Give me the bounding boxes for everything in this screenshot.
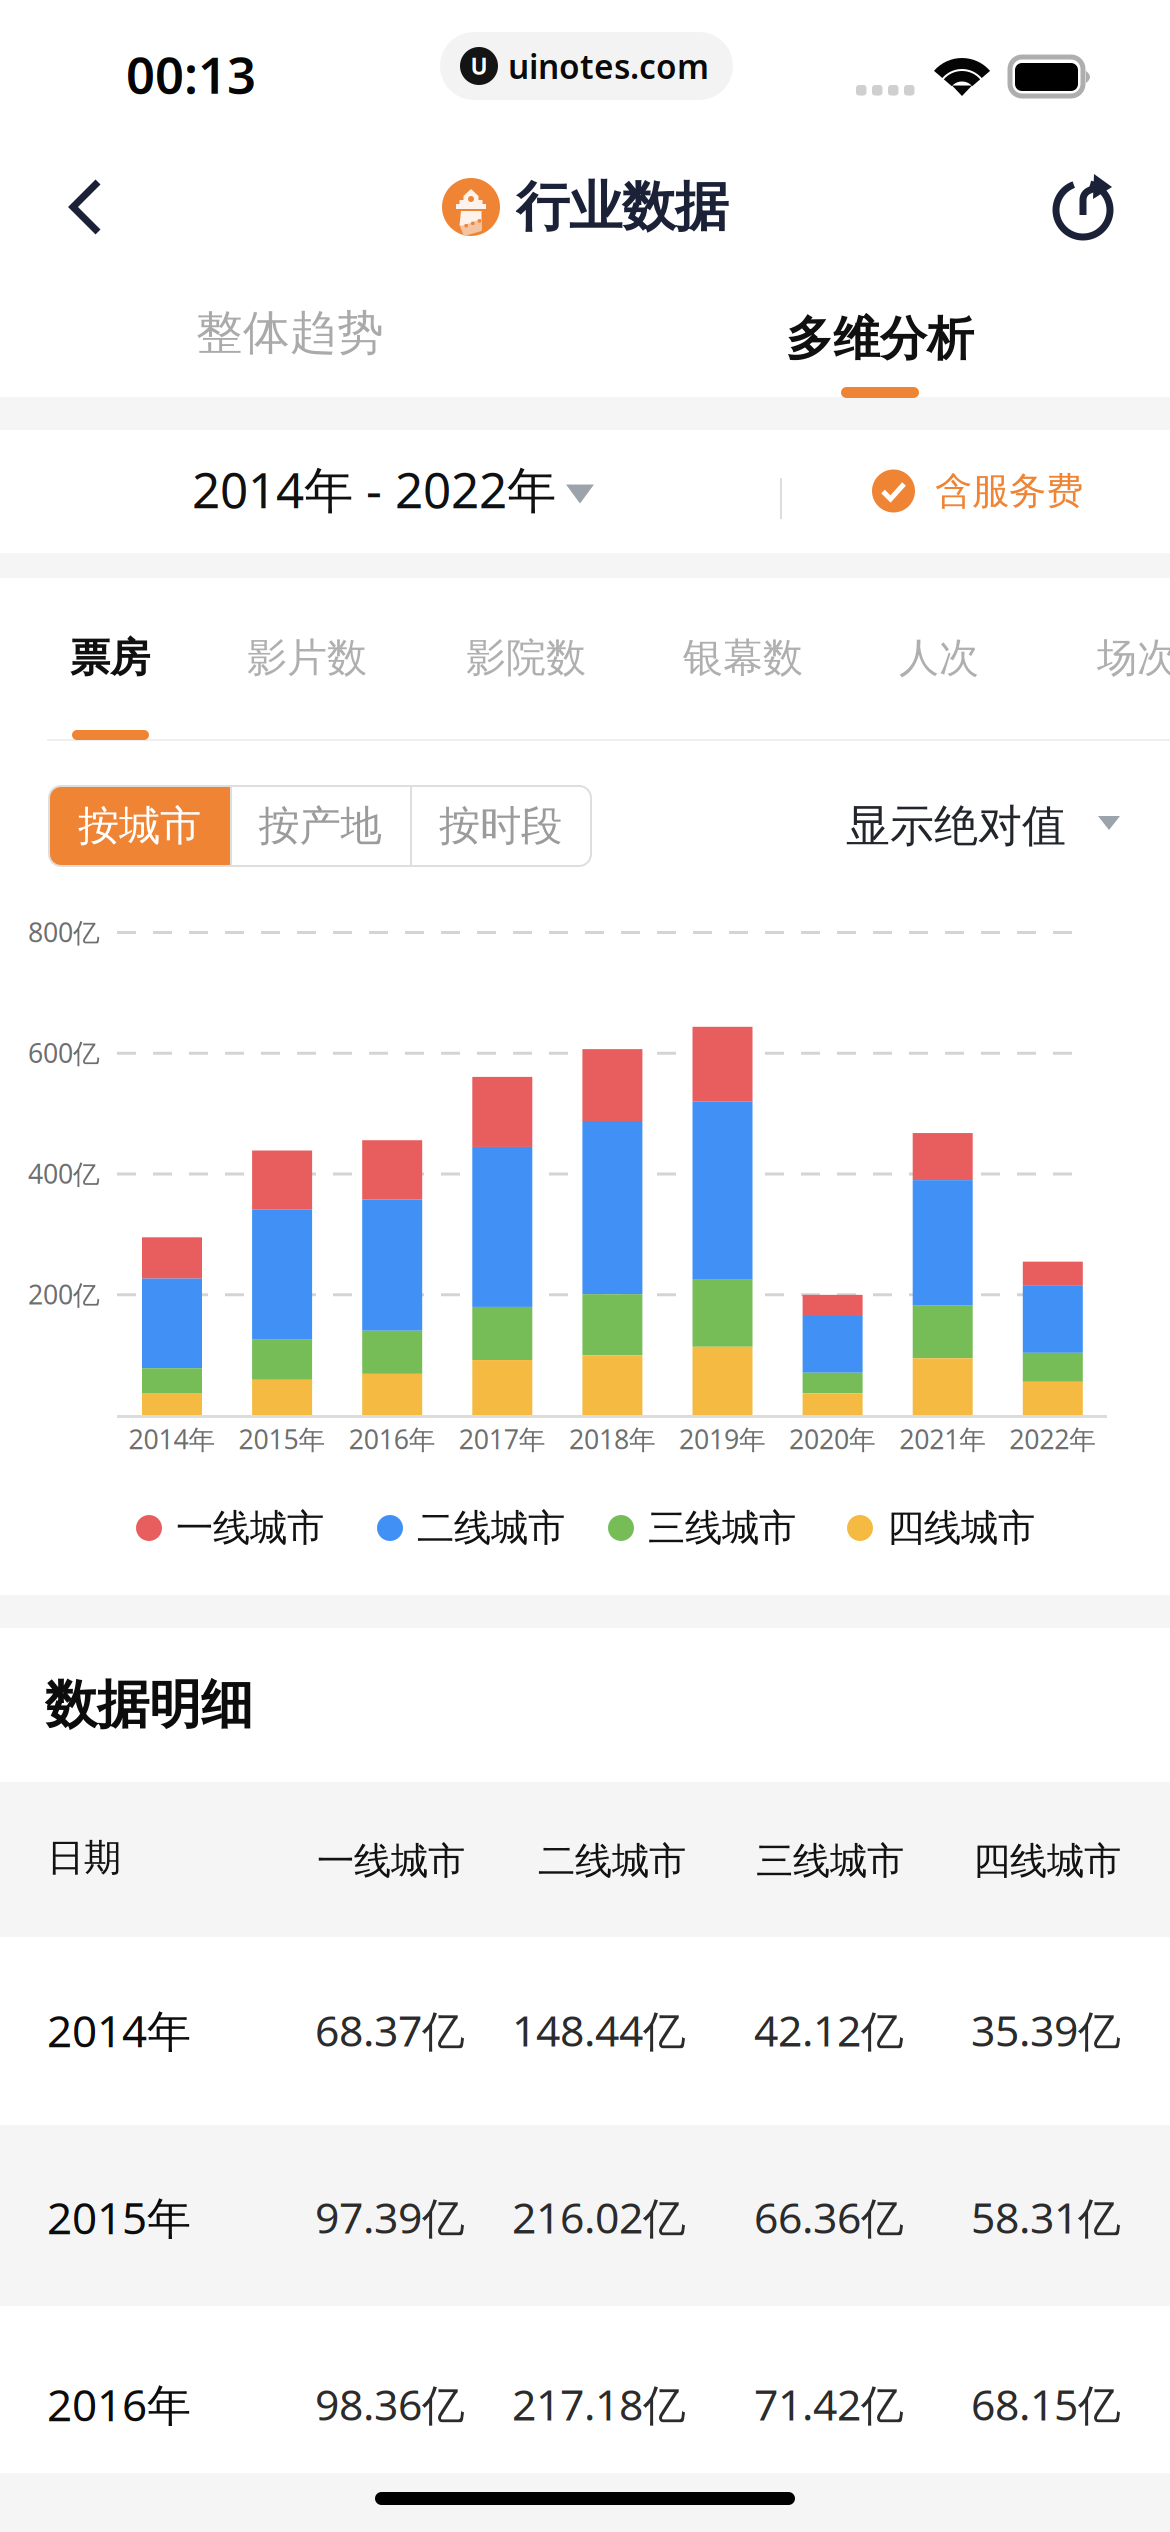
button[interactable]: 显示绝对值 (846, 782, 1120, 870)
staticText: 58.31亿 (971, 2189, 1121, 2245)
button[interactable]: Share (1024, 146, 1146, 268)
staticText: 2014年 (128, 1421, 215, 1457)
button[interactable]: 按城市 (49, 786, 230, 866)
staticText: 66.36亿 (754, 2189, 904, 2245)
staticText: 2022年 (1009, 1421, 1096, 1457)
staticText: 00:13 (126, 40, 256, 108)
staticText: 影院数 (466, 633, 586, 682)
staticText: 二线城市 (538, 1838, 686, 1884)
staticText: 场次 (1097, 633, 1170, 682)
staticText: 一线城市 (176, 1505, 324, 1551)
staticText: 按产地 (258, 801, 381, 851)
staticText: 数据明细 (45, 1673, 253, 1737)
staticText: 二线城市 (417, 1505, 565, 1551)
staticText: 影片数 (247, 633, 367, 682)
staticText: 400亿 (28, 1156, 100, 1191)
staticText: 票房 (70, 633, 150, 682)
staticText: 2015年 (47, 2188, 191, 2246)
staticText: 2016年 (47, 2375, 191, 2433)
staticText: 四线城市 (887, 1505, 1035, 1551)
staticText: 按时段 (439, 801, 562, 851)
staticText: 显示绝对值 (846, 799, 1066, 853)
button[interactable]: 场次 (1032, 604, 1170, 712)
staticText: 按城市 (78, 801, 201, 851)
button[interactable]: 人次 (834, 604, 1044, 712)
button[interactable]: 银幕数 (638, 604, 848, 712)
staticText: 银幕数 (683, 633, 803, 682)
button[interactable]: 按产地 (230, 786, 410, 866)
staticText: 三线城市 (756, 1838, 904, 1884)
staticText: 行业数据 (516, 174, 728, 240)
staticText: 含服务费 (935, 468, 1083, 514)
staticText: 日期 (47, 1835, 121, 1881)
button[interactable]: 整体趋势 (90, 278, 490, 388)
staticText: 2019年 (679, 1421, 766, 1457)
staticText: 35.39亿 (971, 2002, 1121, 2058)
staticText: 2021年 (899, 1421, 986, 1457)
staticText: 多维分析 (786, 310, 974, 368)
staticText: 148.44亿 (512, 2002, 686, 2058)
staticText: 68.15亿 (971, 2376, 1121, 2432)
button[interactable]: 按时段 (410, 786, 591, 866)
staticText: 200亿 (28, 1276, 100, 1312)
staticText: 2017年 (459, 1421, 546, 1457)
staticText: 三线城市 (648, 1505, 796, 1551)
button[interactable]: 影片数 (202, 604, 412, 712)
button[interactable]: 含服务费 (872, 432, 1083, 550)
staticText: 71.42亿 (754, 2376, 904, 2432)
staticText: 42.12亿 (754, 2002, 904, 2058)
staticText: 2015年 (239, 1421, 326, 1457)
staticText: 600亿 (28, 1035, 100, 1070)
staticText: 68.37亿 (315, 2002, 465, 2058)
button[interactable]: 影院数 (421, 604, 631, 712)
staticText: 216.02亿 (512, 2189, 686, 2245)
button[interactable]: 票房 (5, 604, 215, 712)
button[interactable]: 2014年 - 2022年 (192, 430, 594, 548)
button[interactable]: Back (24, 146, 146, 268)
staticText: uinotes.com (508, 44, 709, 88)
staticText: 一线城市 (317, 1838, 465, 1884)
staticText: 98.36亿 (315, 2376, 465, 2432)
staticText: 2016年 (349, 1421, 436, 1457)
staticText: 800亿 (28, 914, 100, 950)
staticText: 217.18亿 (512, 2376, 686, 2432)
staticText: U (470, 51, 487, 81)
staticText: 2014年 - 2022年 (192, 456, 556, 522)
staticText: 整体趋势 (196, 304, 384, 362)
staticText: 2020年 (789, 1421, 876, 1457)
staticText: 2014年 (47, 2001, 191, 2059)
button[interactable]: 多维分析 (680, 278, 1080, 400)
staticText: 2018年 (569, 1421, 656, 1457)
staticText: 四线城市 (973, 1838, 1121, 1884)
staticText: 97.39亿 (315, 2189, 465, 2245)
staticText: 人次 (899, 633, 979, 682)
